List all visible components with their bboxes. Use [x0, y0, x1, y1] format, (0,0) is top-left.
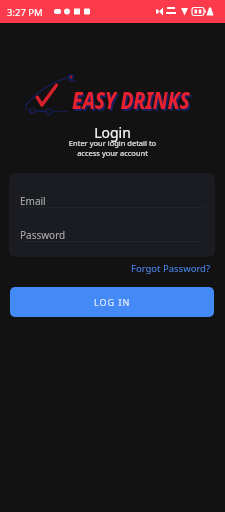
- staticText: access your account: [0, 148, 225, 158]
- button[interactable]: Forgot Password?: [131, 262, 211, 275]
- staticText: Login: [0, 123, 225, 142]
- button[interactable]: LOG IN: [10, 287, 214, 317]
- staticText: Enter your login detail to: [0, 138, 225, 148]
- staticText: EASY DRINKS: [72, 84, 190, 117]
- staticText: Email: [20, 194, 46, 208]
- staticText: Password: [20, 228, 66, 242]
- button[interactable]: Password: [9, 215, 215, 245]
- staticText: LOG IN: [94, 296, 131, 308]
- button[interactable]: Email: [9, 181, 215, 211]
- staticText: 3:27 PM: [7, 6, 43, 19]
